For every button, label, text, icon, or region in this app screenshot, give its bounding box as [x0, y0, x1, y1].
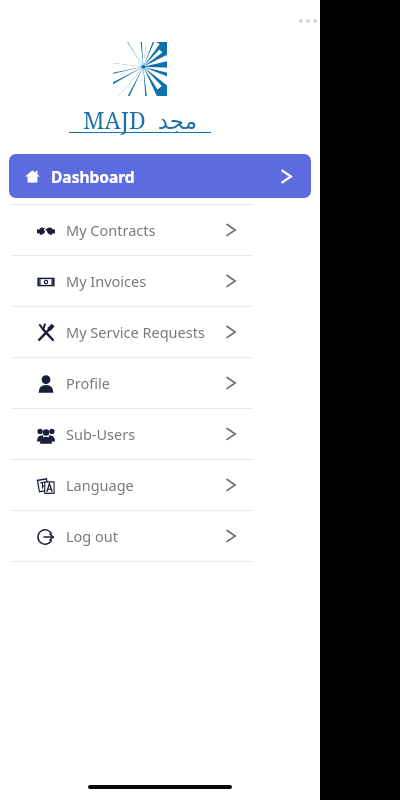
button[interactable]: Profile: [11, 358, 253, 408]
staticText: MAJD مجد: [83, 104, 197, 135]
button[interactable]: Dashboard: [9, 154, 311, 198]
button[interactable]: My Contracts: [11, 205, 253, 255]
staticText: My Service Requests: [66, 322, 205, 342]
button[interactable]: Log out: [11, 511, 253, 561]
button[interactable]: Language: [11, 460, 253, 510]
staticText: My Invoices: [66, 271, 147, 291]
button[interactable]: Sub-Users: [11, 409, 253, 459]
staticText: Sub-Users: [66, 424, 136, 444]
staticText: Log out: [66, 526, 119, 546]
staticText: Language: [66, 475, 134, 495]
staticText: My Contracts: [66, 220, 156, 240]
button[interactable]: My Service Requests: [11, 307, 253, 357]
staticText: Dashboard: [51, 166, 135, 187]
button[interactable]: My Invoices: [11, 256, 253, 306]
staticText: Profile: [66, 373, 110, 393]
